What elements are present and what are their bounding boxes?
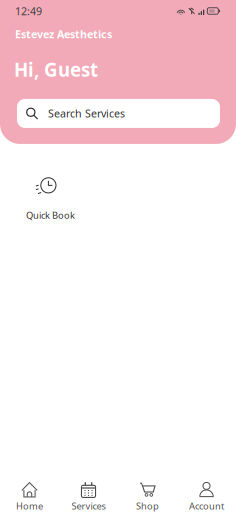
staticText: 12:49 — [15, 4, 42, 18]
staticText: Services — [71, 500, 105, 512]
staticText: Home — [16, 500, 43, 512]
staticText: Shop — [136, 500, 159, 512]
staticText: Search Services — [48, 106, 125, 121]
staticText: Account — [189, 500, 224, 512]
staticText: Quick Book — [26, 209, 75, 221]
button[interactable]: Quick Book — [26, 176, 75, 221]
staticText: Estevez Aesthetics — [15, 27, 112, 41]
staticText: Hi, Guest — [14, 57, 98, 82]
button[interactable]: Services — [59, 482, 118, 512]
button[interactable]: Shop — [118, 482, 177, 512]
button[interactable]: Account — [177, 482, 236, 512]
button[interactable]: Home — [0, 482, 59, 512]
